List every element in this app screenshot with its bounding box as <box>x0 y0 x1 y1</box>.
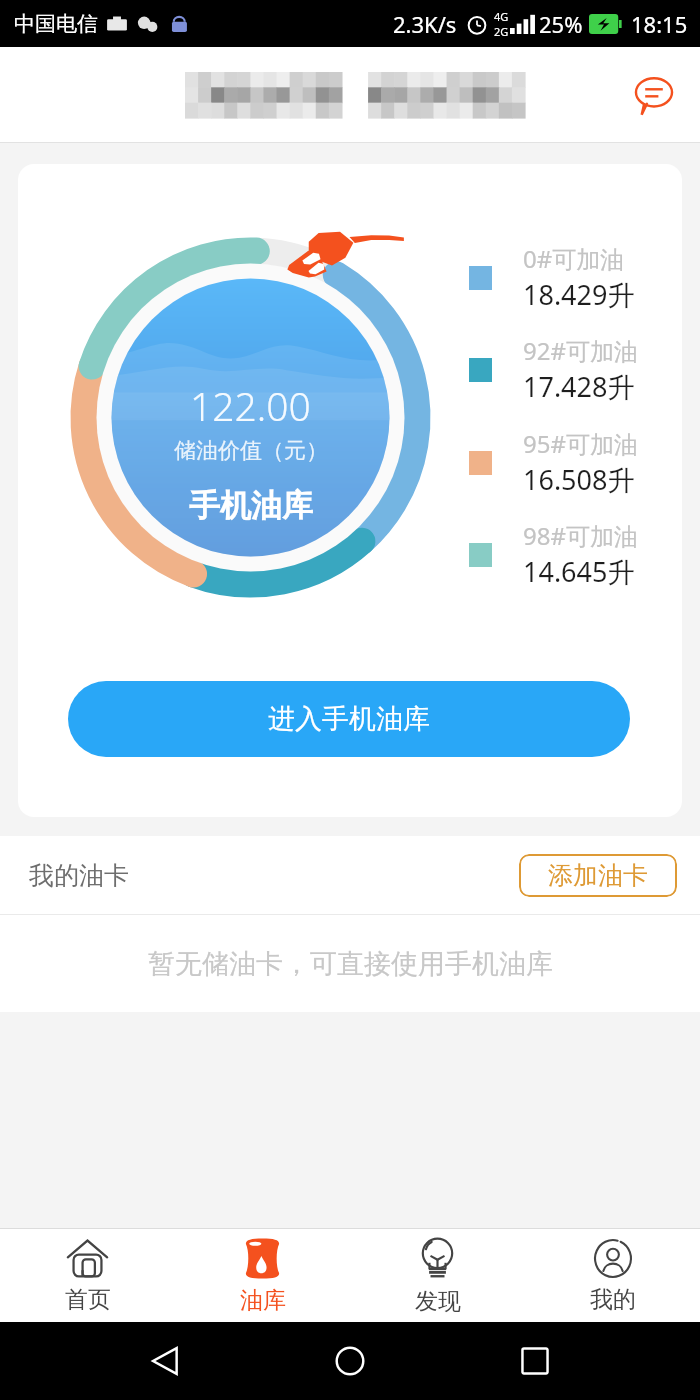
button[interactable]: 发现 <box>350 1229 525 1322</box>
staticText: 122.00 <box>190 379 311 432</box>
staticText: 92#可加油 <box>523 334 638 367</box>
staticText: 98#可加油 <box>523 519 638 552</box>
staticText: 添加油卡 <box>548 860 648 891</box>
staticText: 2G <box>494 24 509 39</box>
button[interactable]: Messages <box>626 67 682 123</box>
staticText: 油库 <box>240 1286 286 1315</box>
staticText: 0#可加油 <box>523 242 625 275</box>
button[interactable]: 首页 <box>0 1229 175 1322</box>
staticText: 我的 <box>590 1285 636 1314</box>
staticText: 95#可加油 <box>523 427 638 460</box>
staticText: 手机油库 <box>189 486 313 525</box>
staticText: 进入手机油库 <box>268 702 430 736</box>
staticText: 储油价值（元） <box>174 437 328 465</box>
button[interactable]: 我的 <box>525 1229 700 1322</box>
staticText: 首页 <box>65 1285 111 1314</box>
staticText: 2.3K/s <box>393 9 457 39</box>
staticText: 暂无储油卡，可直接使用手机油库 <box>148 947 553 981</box>
staticText: 16.508升 <box>523 461 635 498</box>
button[interactable]: 添加油卡 <box>519 854 677 897</box>
staticText: 中国电信 <box>14 11 98 37</box>
staticText: 18:15 <box>631 9 688 39</box>
staticText: 发现 <box>415 1287 461 1316</box>
staticText: 4G <box>494 9 509 24</box>
staticText: 14.645升 <box>523 553 635 590</box>
button[interactable]: 进入手机油库 <box>68 681 630 757</box>
staticText: 我的油卡 <box>29 860 129 891</box>
staticText: 18.429升 <box>523 276 635 313</box>
staticText: 25% <box>539 9 583 39</box>
staticText: 17.428升 <box>523 368 635 405</box>
button[interactable]: 油库 <box>175 1229 350 1322</box>
